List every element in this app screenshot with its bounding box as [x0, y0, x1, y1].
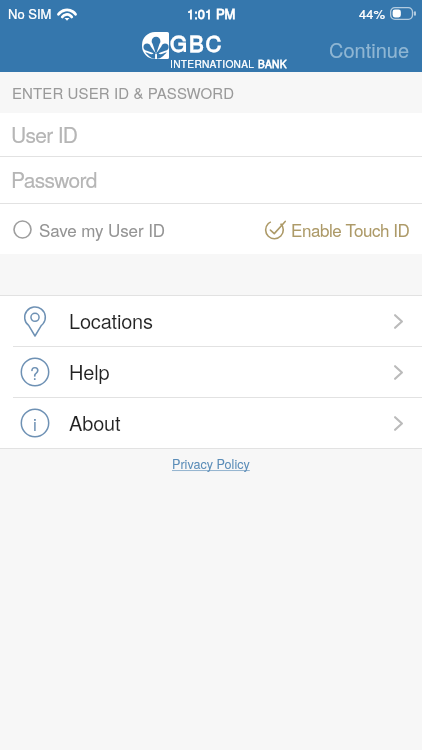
other: Open [394, 365, 403, 380]
button[interactable]: i [0, 398, 422, 448]
other: Open [394, 416, 403, 431]
button[interactable]: Save my User ID [0, 217, 171, 241]
staticText: Locations [69, 306, 153, 335]
staticText: Save my User ID [39, 217, 165, 241]
other: Open [394, 314, 403, 329]
staticText: No SIM [8, 4, 52, 23]
staticText: Password [11, 164, 97, 194]
button[interactable]: ? [0, 347, 422, 397]
button[interactable]: Enable Touch ID [259, 217, 422, 241]
staticText: BANK [258, 56, 287, 70]
button[interactable]: Continue [317, 27, 422, 72]
staticText: User ID [11, 119, 78, 149]
staticText: About [69, 408, 121, 437]
staticText: ? [30, 360, 40, 384]
staticText: 1:01 PM [187, 4, 236, 23]
staticText: Continue [329, 35, 410, 64]
staticText: 44% [359, 4, 386, 23]
staticText: INTERNATIONAL [170, 56, 258, 70]
staticText: Help [69, 357, 110, 386]
staticText: GBC [170, 27, 224, 59]
button[interactable]: User ID [0, 113, 422, 156]
staticText: Enable Touch ID [291, 217, 410, 241]
staticText: i [33, 411, 37, 435]
staticText: ENTER USER ID & PASSWORD [12, 82, 235, 103]
staticText: Privacy Policy [172, 455, 250, 473]
button[interactable]: Locations [0, 296, 422, 346]
button[interactable]: Password [0, 157, 422, 203]
button[interactable]: Privacy Policy [166, 449, 256, 479]
